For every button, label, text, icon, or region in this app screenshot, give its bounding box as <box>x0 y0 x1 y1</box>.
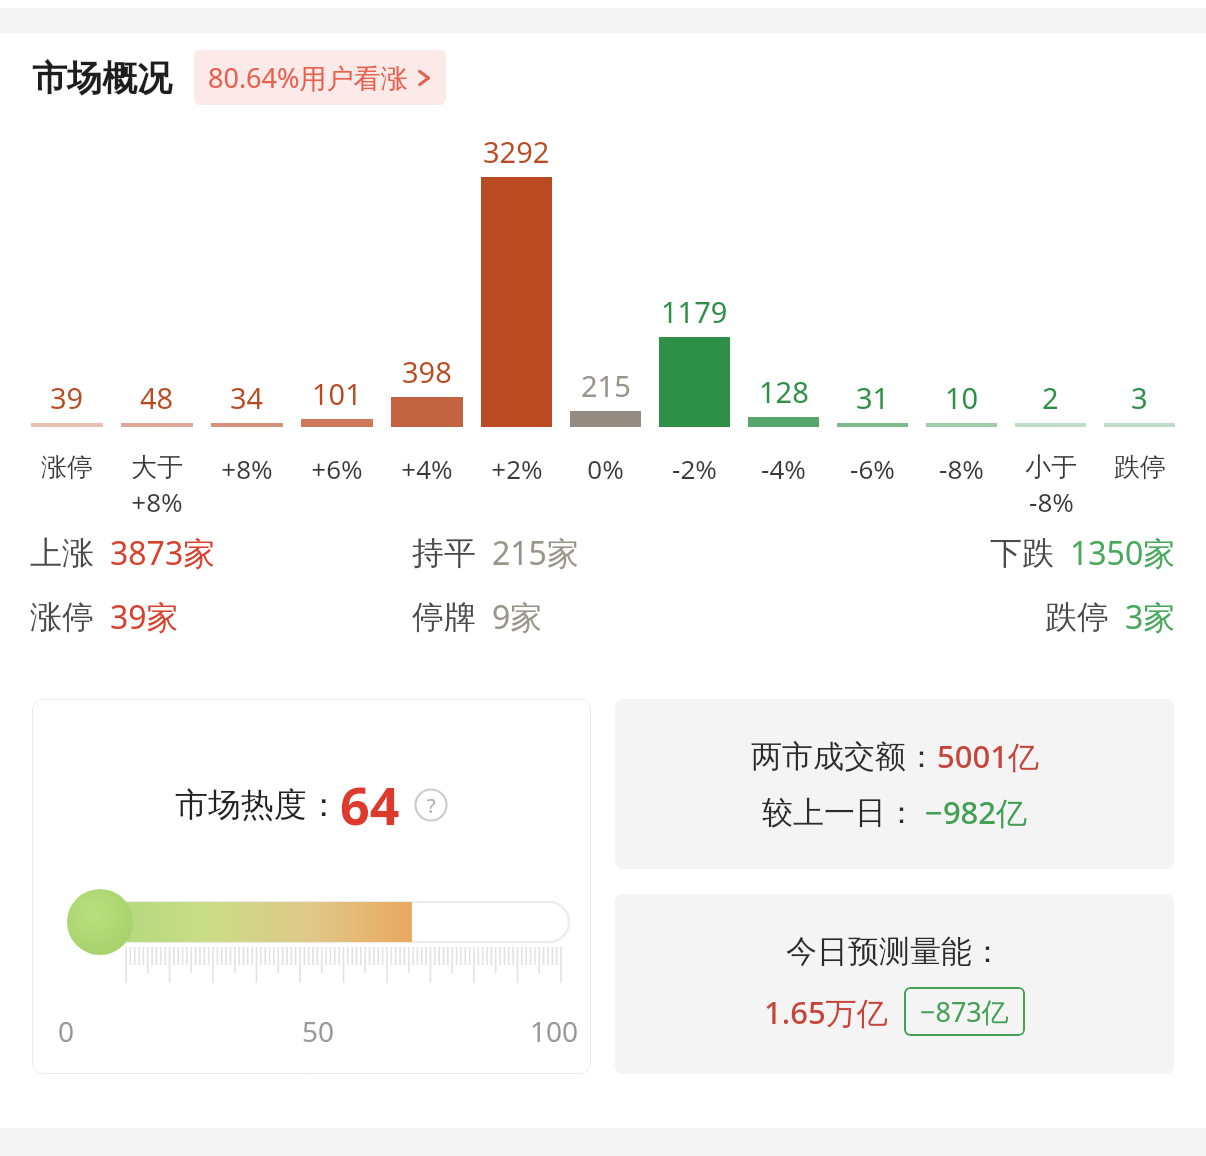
staticText: 大于 <box>131 451 183 484</box>
staticText: 涨停 <box>30 597 94 637</box>
staticText: 1179 <box>661 292 728 331</box>
staticText: -8% <box>1029 484 1074 517</box>
staticText: 100 <box>530 1012 579 1050</box>
button[interactable]: 帮助说明 <box>414 788 448 822</box>
staticText: 3873家 <box>110 531 216 575</box>
staticText: 215家 <box>492 531 579 575</box>
staticText: -4% <box>761 451 806 486</box>
staticText: −873亿 <box>920 993 1009 1030</box>
staticText: 128 <box>759 372 809 411</box>
staticText: 跌停 <box>1045 597 1109 637</box>
staticText: +8% <box>221 451 273 486</box>
staticText: 31 <box>856 378 890 417</box>
staticText: 101 <box>312 374 362 413</box>
staticText: 市场热度： <box>175 784 340 826</box>
staticText: 39 <box>50 378 84 417</box>
staticText: 39家 <box>110 595 179 639</box>
staticText: 80.64%用户看涨 <box>208 59 408 96</box>
staticText: 398 <box>402 352 452 391</box>
staticText: +6% <box>311 451 363 486</box>
staticText: 1.65万亿 <box>764 991 888 1033</box>
button[interactable]: 今日预测量能： <box>615 894 1174 1074</box>
staticText: 小于 <box>1025 451 1077 484</box>
button[interactable]: 两市成交额： <box>615 699 1174 869</box>
staticText: 10 <box>945 378 979 417</box>
staticText: 持平 <box>412 533 476 573</box>
staticText: 50 <box>302 1012 335 1050</box>
button[interactable]: 80.64%用户看涨 <box>194 50 446 105</box>
staticText: 0 <box>58 1012 75 1050</box>
staticText: −982亿 <box>917 791 1028 833</box>
staticText: 5001亿 <box>937 735 1039 777</box>
staticText: -6% <box>850 451 895 486</box>
staticText: -8% <box>939 451 984 486</box>
staticText: 两市成交额： <box>751 737 937 776</box>
staticText: 涨停 <box>41 451 93 484</box>
staticText: 3292 <box>483 132 550 171</box>
staticText: 跌停 <box>1114 451 1166 484</box>
staticText: 0% <box>587 451 624 486</box>
staticText: 34 <box>230 378 264 417</box>
staticText: 215 <box>581 366 631 405</box>
staticText: +2% <box>491 451 543 486</box>
staticText: +4% <box>401 451 453 486</box>
staticText: +8% <box>131 484 183 517</box>
staticText: 3家 <box>1125 595 1176 639</box>
staticText: -2% <box>672 451 717 486</box>
staticText: 3 <box>1131 378 1148 417</box>
staticText: 上涨 <box>30 533 94 573</box>
button[interactable]: 市场热度： <box>32 699 591 1074</box>
staticText: 较上一日： <box>762 793 917 832</box>
staticText: 今日预测量能： <box>786 932 1003 971</box>
staticText: 64 <box>340 769 400 840</box>
staticText: 9家 <box>492 595 543 639</box>
staticText: 1350家 <box>1070 531 1176 575</box>
staticText: ? <box>427 792 436 819</box>
staticText: 停牌 <box>412 597 476 637</box>
staticText: 48 <box>140 378 174 417</box>
staticText: 2 <box>1042 378 1059 417</box>
staticText: 下跌 <box>990 533 1054 573</box>
staticText: 市场概况 <box>32 56 172 100</box>
